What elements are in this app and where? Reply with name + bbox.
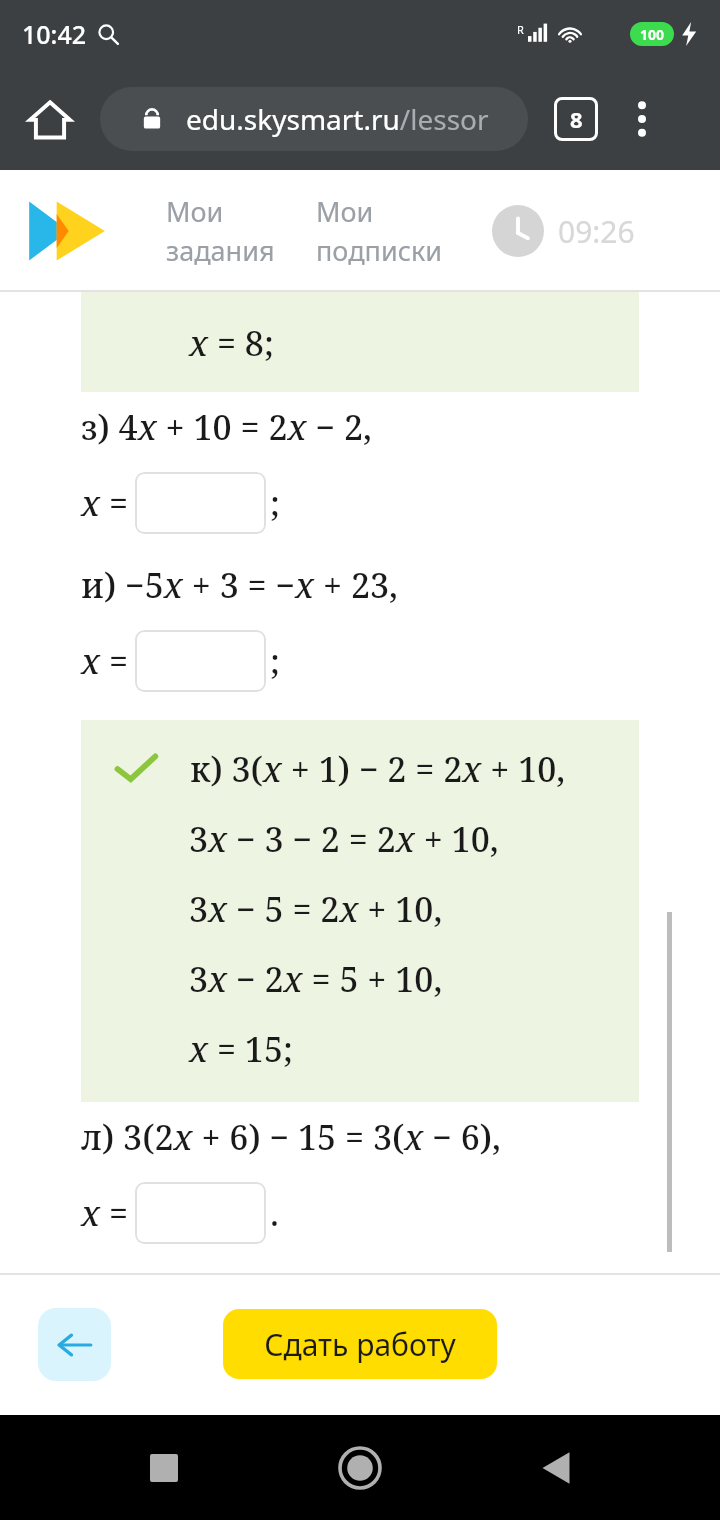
staticText: ; — [270, 480, 280, 526]
staticText: 09:26 — [558, 211, 635, 252]
staticText: з) 4x + 10 = 2x − 2, — [81, 404, 372, 450]
staticText: x = — [81, 1190, 129, 1236]
button[interactable]: Мои подписки — [316, 193, 492, 269]
staticText: Сдать работу — [264, 1324, 456, 1365]
staticText: x = — [81, 638, 129, 684]
button[interactable] — [135, 1182, 266, 1244]
staticText: 3x − 5 = 2x + 10, — [189, 886, 443, 932]
staticText: 10:42 — [22, 17, 87, 51]
staticText: 100 — [640, 25, 665, 44]
button[interactable]: Home — [24, 93, 76, 145]
staticText: x = 15; — [189, 1026, 293, 1072]
staticText: Мои задания — [166, 193, 275, 269]
staticText: edu.skysmart.ru/lessor — [186, 100, 489, 138]
button[interactable]: Recents — [132, 1436, 196, 1500]
button[interactable]: Мои задания — [166, 193, 316, 269]
staticText: . — [270, 1190, 279, 1236]
staticText: 3x − 2x = 5 + 10, — [189, 956, 443, 1002]
button[interactable] — [135, 630, 266, 692]
button[interactable] — [135, 472, 266, 534]
button[interactable]: edu.skysmart.ru/lessor — [100, 87, 528, 151]
staticText: к) 3(x + 1) − 2 = 2x + 10, — [190, 746, 566, 792]
staticText: Мои подписки — [316, 193, 443, 269]
button[interactable]: Back — [524, 1436, 588, 1500]
staticText: и) −5x + 3 = −x + 23, — [81, 562, 399, 608]
staticText: 3x − 3 − 2 = 2x + 10, — [189, 816, 499, 862]
staticText: R — [517, 22, 524, 37]
button[interactable]: Назад — [38, 1308, 111, 1381]
button[interactable]: Tabs — [554, 97, 598, 141]
staticText: x = 8; — [189, 320, 274, 366]
staticText: 8 — [570, 104, 583, 134]
staticText: x = — [81, 480, 129, 526]
button[interactable]: Home — [328, 1436, 392, 1500]
button[interactable]: Сдать работу — [223, 1309, 497, 1379]
staticText: л) 3(2x + 6) − 15 = 3(x − 6), — [81, 1114, 501, 1160]
button[interactable]: More options — [620, 97, 664, 141]
staticText: ; — [270, 638, 280, 684]
button[interactable]: Skysmart — [24, 194, 110, 268]
